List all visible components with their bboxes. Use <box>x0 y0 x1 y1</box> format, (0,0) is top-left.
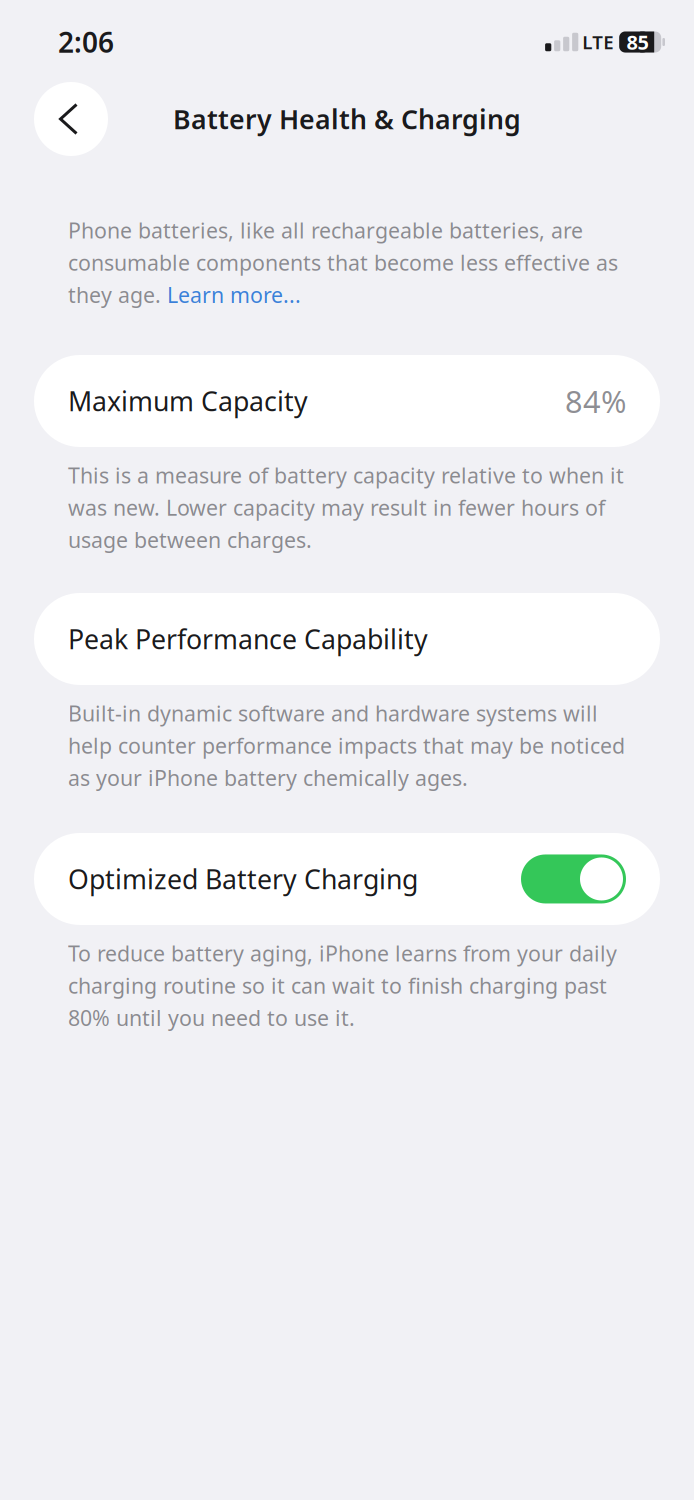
staticText: 2:06 <box>58 23 114 61</box>
button[interactable]: Learn more... <box>167 281 301 309</box>
button[interactable]: Back <box>34 82 108 156</box>
staticText: they age. <box>68 281 167 309</box>
staticText: consumable components that become less e… <box>68 248 618 277</box>
staticText: Optimized Battery Charging <box>68 861 418 897</box>
staticText: Learn more... <box>167 281 301 309</box>
staticText: Battery Health & Charging <box>173 101 521 137</box>
button[interactable]: Maximum Capacity <box>0 355 694 447</box>
staticText: This is a measure of battery capacity re… <box>68 461 624 554</box>
staticText: Phone batteries, like all rechargeable b… <box>68 216 583 244</box>
staticText: LTE <box>582 30 613 54</box>
button[interactable]: Peak Performance Capability <box>0 593 694 685</box>
staticText: To reduce battery aging, iPhone learns f… <box>68 939 617 1032</box>
staticText: Peak Performance Capability <box>68 621 428 657</box>
staticText: Built-in dynamic software and hardware s… <box>68 699 625 792</box>
staticText: 85 <box>626 29 648 55</box>
staticText: Maximum Capacity <box>68 383 308 419</box>
staticText: 84% <box>565 381 626 421</box>
button[interactable]: Optimized Battery Charging <box>0 833 694 925</box>
button[interactable]: Optimized Battery Charging <box>521 854 626 903</box>
